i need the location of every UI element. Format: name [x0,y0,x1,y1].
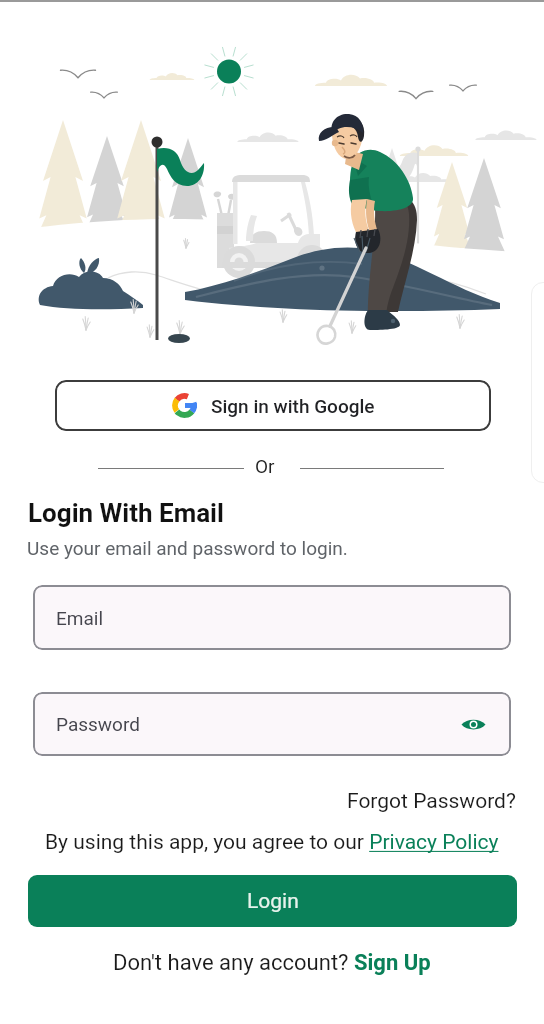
button[interactable]: Show password [458,709,488,739]
button[interactable]: Sign in with Google [55,380,491,431]
button[interactable]: Email [33,585,511,650]
staticText: Login [247,889,299,914]
staticText: Login With Email [28,498,224,528]
staticText: Or [255,455,275,477]
staticText: Sign Up [354,950,431,976]
button[interactable]: Login [28,875,517,927]
staticText: By using this app, you agree to our Priv… [45,830,499,855]
staticText: Sign in with Google [211,395,375,417]
staticText: Use your email and password to login. [27,537,348,559]
staticText: Don't have any account? [113,950,354,976]
staticText: Email [56,607,104,629]
staticText: Password [56,713,140,735]
button[interactable]: Password [33,692,511,756]
button[interactable]: Forgot Password? [347,789,516,814]
button[interactable]: Sign Up [354,950,431,976]
staticText: Forgot Password? [347,789,516,814]
